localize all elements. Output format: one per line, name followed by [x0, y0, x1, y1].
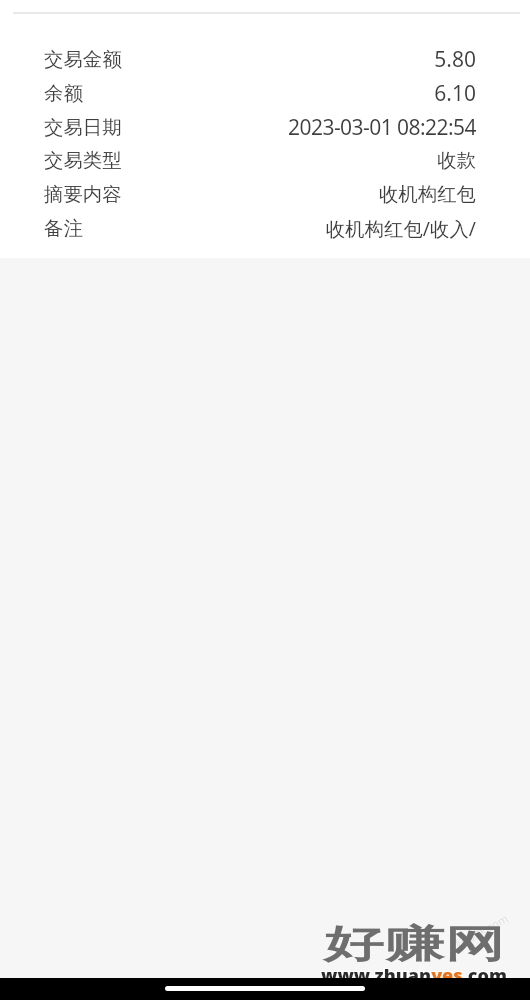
staticText: www.zhuanyes.com: [321, 964, 507, 989]
staticText: 交易金额: [44, 47, 122, 71]
staticText: 交易类型: [44, 148, 122, 172]
staticText: 2023-03-01 08:22:54: [288, 113, 476, 142]
staticText: 好赚网: [324, 920, 505, 968]
staticText: www.zhuanyes.com: [320, 964, 506, 989]
staticText: www.zhuanyes.com: [322, 963, 508, 988]
button[interactable]: 交易金额: [0, 42, 530, 76]
staticText: 备注: [44, 216, 83, 240]
staticText: 摘要内容: [44, 182, 122, 206]
staticText: www.zhuanyes.com: [321, 962, 507, 987]
staticText: 交易日期: [44, 115, 122, 139]
button[interactable]: 备注: [0, 211, 530, 245]
staticText: 收款: [437, 148, 476, 172]
staticText: 收机构红包: [379, 182, 476, 206]
staticText: 余额: [44, 81, 83, 105]
staticText: www.zhuanyes.com: [322, 964, 508, 989]
staticText: 收机构红包/收入/: [325, 215, 476, 241]
staticText: www.zhuanyes.com: [320, 962, 506, 987]
button[interactable]: 摘要内容: [0, 177, 530, 211]
button[interactable]: 交易日期: [0, 110, 530, 144]
staticText: www.zhuanyes.com: [322, 962, 508, 987]
button[interactable]: 交易类型: [0, 143, 530, 177]
staticText: www.zhuanyes.com: [320, 963, 506, 988]
staticText: 好赚网.com: [452, 910, 511, 951]
staticText: www.zhuanyes.com: [321, 963, 507, 988]
staticText: 5.80: [434, 45, 476, 74]
staticText: 6.10: [434, 79, 476, 108]
button[interactable]: 余额: [0, 76, 530, 110]
